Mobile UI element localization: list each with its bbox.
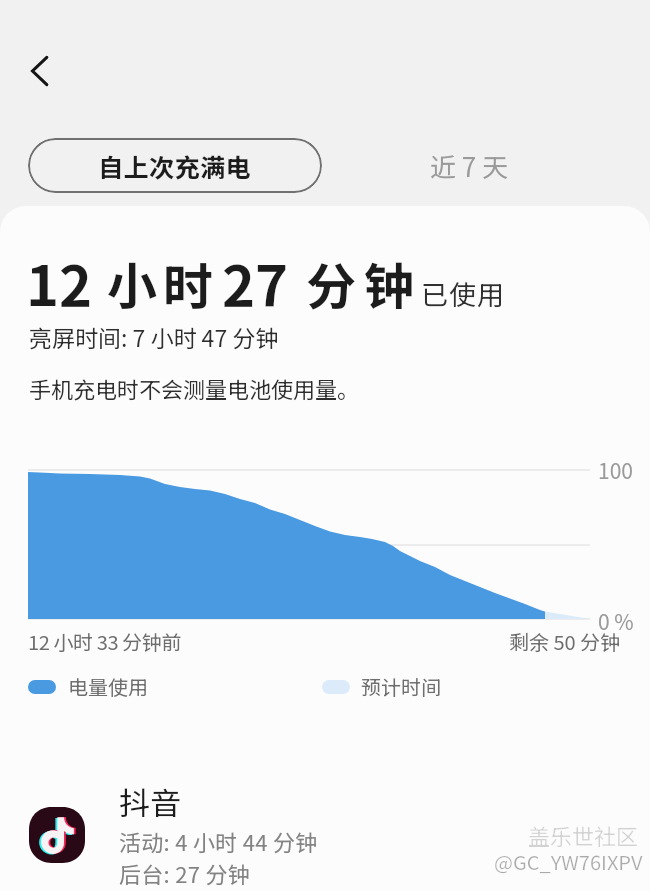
staticText: 12 小时 33 分钟前	[28, 627, 182, 656]
staticText: 后台: 27 分钟	[119, 857, 251, 889]
staticText: 小	[107, 247, 157, 319]
staticText: 12	[26, 241, 93, 322]
staticText: 近 7 天	[430, 147, 509, 185]
staticText: 时	[163, 247, 213, 319]
staticText: @GC_YW76IXPV	[494, 847, 643, 876]
button[interactable]: 自上次充满电	[28, 138, 322, 193]
staticText: 活动: 4 小时 44 分钟	[119, 825, 318, 857]
staticText: 抖音	[119, 779, 181, 824]
staticText: 钟	[364, 247, 414, 319]
staticText: 0 %	[598, 606, 634, 636]
staticText: 自上次充满电	[98, 148, 252, 184]
staticText: 分	[306, 247, 356, 319]
staticText: 预计时间	[361, 672, 441, 701]
staticText: 已使用	[421, 274, 505, 313]
staticText: 手机充电时不会测量电池使用量。	[29, 372, 360, 404]
button[interactable]: 近 7 天	[399, 138, 539, 193]
staticText: 盖乐世社区	[528, 819, 639, 851]
staticText: 27	[222, 241, 289, 322]
button[interactable]: Back	[14, 45, 66, 97]
button[interactable]: 抖音	[0, 774, 650, 891]
staticText: 电量使用	[68, 672, 148, 701]
staticText: 100	[598, 455, 633, 485]
staticText: 剩余 50 分钟	[509, 627, 621, 656]
staticText: 亮屏时间: 7 小时 47 分钟	[29, 320, 279, 353]
